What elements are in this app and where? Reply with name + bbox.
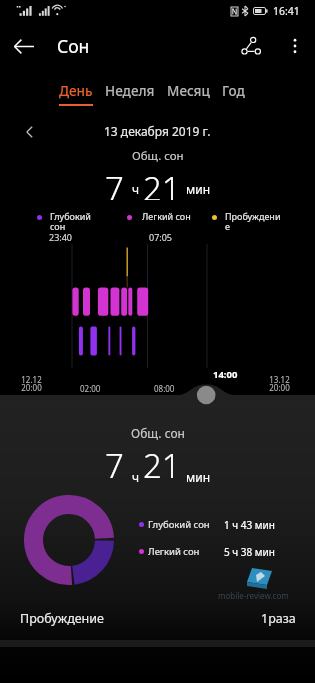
staticText: 16:41 (273, 4, 300, 18)
staticText: Легкий сон (148, 545, 200, 558)
staticText: 21 (143, 166, 181, 200)
staticText: ч (132, 181, 140, 197)
staticText: 1 ч 43 мин (224, 518, 275, 532)
staticText: Глубокий сон (50, 210, 108, 233)
staticText: Общ. сон (131, 425, 185, 441)
button[interactable]: Год (216, 82, 251, 104)
staticText: Общ. сон (132, 148, 184, 164)
staticText: 23:40 (49, 231, 73, 243)
staticText: Легкий сон (142, 210, 200, 222)
staticText: 7 (105, 166, 124, 200)
staticText: 14:00 (213, 368, 238, 381)
staticText: Глубокий сон (148, 518, 210, 531)
button[interactable]: More options (275, 26, 315, 66)
staticText: 21 (143, 443, 181, 488)
button[interactable]: Неделя (99, 82, 161, 104)
staticText: 7 (105, 443, 124, 488)
staticText: 08:00 (154, 383, 175, 394)
button[interactable]: Back (0, 22, 48, 70)
staticText: Неделя (105, 82, 155, 100)
staticText: День (59, 82, 93, 100)
staticText: 13 декабря 2019 г. (104, 123, 211, 139)
staticText: 13.12 20:00 (269, 374, 290, 393)
staticText: Год (222, 82, 245, 100)
button[interactable]: Месяц (161, 82, 216, 104)
button[interactable]: День (53, 82, 99, 106)
staticText: 07:05 (149, 231, 173, 243)
staticText: Пробуждение (20, 610, 104, 627)
staticText: mobile-review.com (218, 590, 289, 601)
staticText: Месяц (167, 82, 210, 100)
staticText: 5 ч 38 мин (224, 545, 275, 559)
staticText: Пробуждени е (225, 210, 283, 233)
button[interactable]: Previous day (18, 121, 40, 143)
staticText: Сон (57, 34, 90, 58)
staticText: 12.12 20:00 (21, 374, 42, 393)
staticText: 1раза (261, 610, 296, 627)
staticText: 02:00 (80, 383, 101, 394)
staticText: мин (186, 181, 211, 197)
button[interactable]: Share (227, 22, 275, 70)
staticText: ч (132, 469, 140, 485)
staticText: мин (186, 469, 211, 485)
button[interactable]: Пробуждение (0, 603, 315, 633)
